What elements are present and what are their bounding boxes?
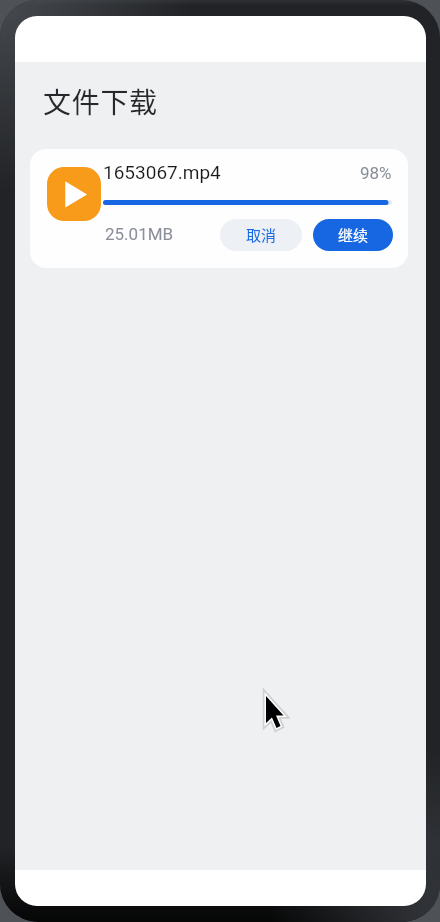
staticText: 文件下载 <box>43 81 158 122</box>
staticText: 取消 <box>246 224 277 246</box>
staticText: 1653067.mp4 <box>103 161 221 183</box>
staticText: 98% <box>360 163 392 183</box>
button[interactable]: 继续 <box>313 219 393 251</box>
button[interactable] <box>47 167 101 221</box>
staticText: 继续 <box>338 224 369 246</box>
button[interactable]: 取消 <box>220 219 302 251</box>
staticText: 25.01MB <box>105 224 174 244</box>
